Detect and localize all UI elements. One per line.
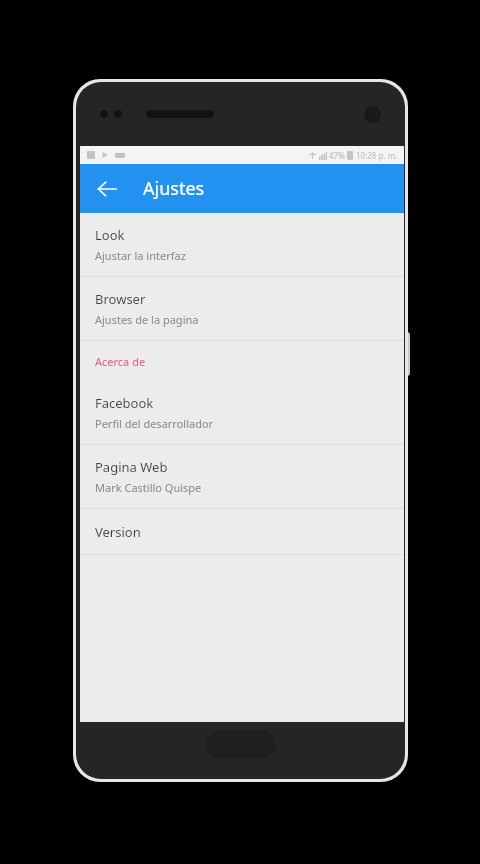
- staticText: Facebook: [95, 394, 154, 412]
- staticText: Browser: [95, 290, 146, 308]
- staticText: Look: [95, 226, 125, 244]
- staticText: Version: [95, 523, 141, 541]
- button[interactable]: Facebook: [80, 381, 404, 444]
- button[interactable]: Pagina Web: [80, 445, 404, 508]
- button[interactable]: Look: [80, 213, 404, 276]
- staticText: Ajustar la interfaz: [95, 248, 186, 263]
- button[interactable]: Back: [85, 167, 129, 211]
- staticText: Perfil del desarrollador: [95, 416, 214, 431]
- staticText: Acerca de: [95, 354, 146, 369]
- button[interactable]: Version: [80, 509, 404, 554]
- staticText: Ajustes: [143, 176, 205, 201]
- staticText: Mark Castillo Quispe: [95, 480, 202, 495]
- staticText: Pagina Web: [95, 458, 168, 476]
- staticText: Ajustes de la pagina: [95, 312, 199, 327]
- staticText: 47%: [329, 150, 345, 161]
- button[interactable]: Browser: [80, 277, 404, 340]
- staticText: 10:28 p. m.: [356, 150, 398, 161]
